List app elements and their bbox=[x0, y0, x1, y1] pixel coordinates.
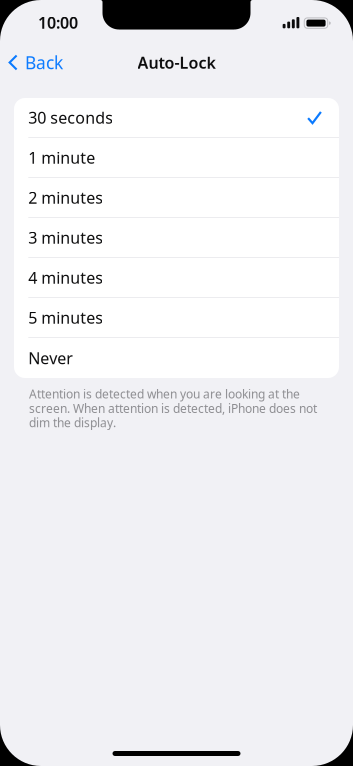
staticText: 4 minutes bbox=[28, 267, 103, 288]
staticText: 30 seconds bbox=[28, 107, 113, 128]
staticText: 10:00 bbox=[38, 12, 78, 33]
staticText: Attention is detected when you are looki… bbox=[29, 386, 317, 431]
button[interactable]: 30 seconds bbox=[14, 98, 339, 138]
button[interactable]: Never bbox=[14, 338, 339, 378]
button[interactable]: 5 minutes bbox=[14, 298, 339, 338]
button[interactable]: 1 minute bbox=[14, 138, 339, 178]
button[interactable]: 2 minutes bbox=[14, 178, 339, 218]
staticText: 2 minutes bbox=[28, 187, 103, 208]
staticText: 1 minute bbox=[28, 147, 95, 168]
button[interactable]: 3 minutes bbox=[14, 218, 339, 258]
staticText: 3 minutes bbox=[28, 227, 103, 248]
staticText: Back bbox=[25, 51, 63, 74]
staticText: 5 minutes bbox=[28, 307, 103, 328]
button[interactable]: 4 minutes bbox=[14, 258, 339, 298]
button[interactable]: Back bbox=[0, 44, 120, 81]
staticText: Auto-Lock bbox=[137, 52, 215, 73]
staticText: Never bbox=[28, 347, 73, 369]
